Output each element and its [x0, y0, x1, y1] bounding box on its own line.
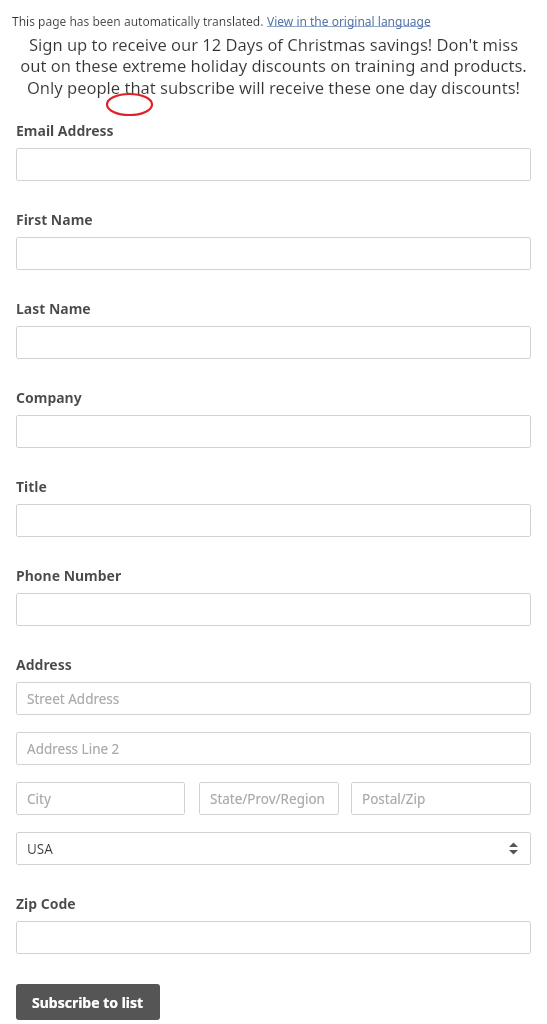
staticText: Email Address [16, 121, 114, 140]
staticText: State/Prov/Region [210, 790, 325, 808]
button[interactable]: Last Name [16, 326, 531, 359]
button[interactable]: Country: USA [16, 832, 531, 865]
staticText: Street Address [27, 690, 120, 708]
staticText: Postal/Zip [362, 790, 426, 808]
staticText: USA [27, 840, 53, 858]
staticText: Last Name [16, 299, 91, 318]
button[interactable]: Zip Code [16, 921, 531, 954]
staticText: Phone Number [16, 566, 122, 585]
staticText: First Name [16, 210, 93, 229]
staticText: Sign up to receive our 12 Days of Christ… [14, 33, 533, 99]
staticText: This page has been automatically transla… [12, 13, 267, 29]
staticText: Title [16, 477, 47, 496]
staticText: Address Line 2 [27, 740, 120, 758]
staticText: Company [16, 388, 82, 407]
staticText: Subscribe to list [32, 993, 144, 1012]
staticText: Zip Code [16, 894, 76, 913]
staticText: City [27, 790, 51, 808]
button[interactable]: Postal/Zip [351, 782, 531, 815]
button[interactable]: Phone Number [16, 593, 531, 626]
button[interactable]: City [16, 782, 185, 815]
button[interactable]: First Name [16, 237, 531, 270]
button[interactable]: Email Address [16, 148, 531, 181]
button[interactable]: Address Line 2 [16, 732, 531, 765]
button[interactable]: State/Prov/Region [199, 782, 339, 815]
button[interactable]: Street Address [16, 682, 531, 715]
staticText: Address [16, 655, 72, 674]
button[interactable]: Title [16, 504, 531, 537]
button[interactable]: View in the original language [267, 13, 431, 29]
button[interactable]: Company [16, 415, 531, 448]
button[interactable]: Subscribe to list [16, 984, 160, 1020]
